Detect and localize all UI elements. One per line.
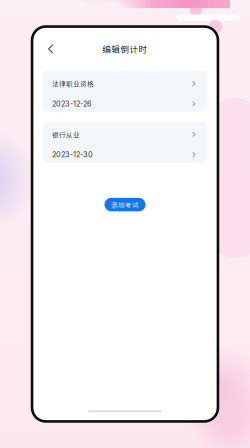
staticText: 2023-12-26 [52, 99, 92, 108]
staticText: 2023-12-30 [52, 150, 93, 159]
staticText: 添加考试 [111, 200, 139, 209]
button[interactable]: 添加考试 [104, 198, 145, 211]
button[interactable]: 2023-12-26 [43, 91, 207, 112]
button[interactable]: Back [41, 39, 61, 59]
staticText: 法律职业资格 [52, 79, 94, 88]
staticText: 编辑倒计时 [102, 43, 147, 55]
button[interactable]: 2023-12-30 [43, 142, 207, 163]
button[interactable]: 银行从业 [43, 122, 207, 142]
staticText: 银行从业 [52, 130, 80, 139]
button[interactable]: 法律职业资格 [43, 71, 207, 91]
